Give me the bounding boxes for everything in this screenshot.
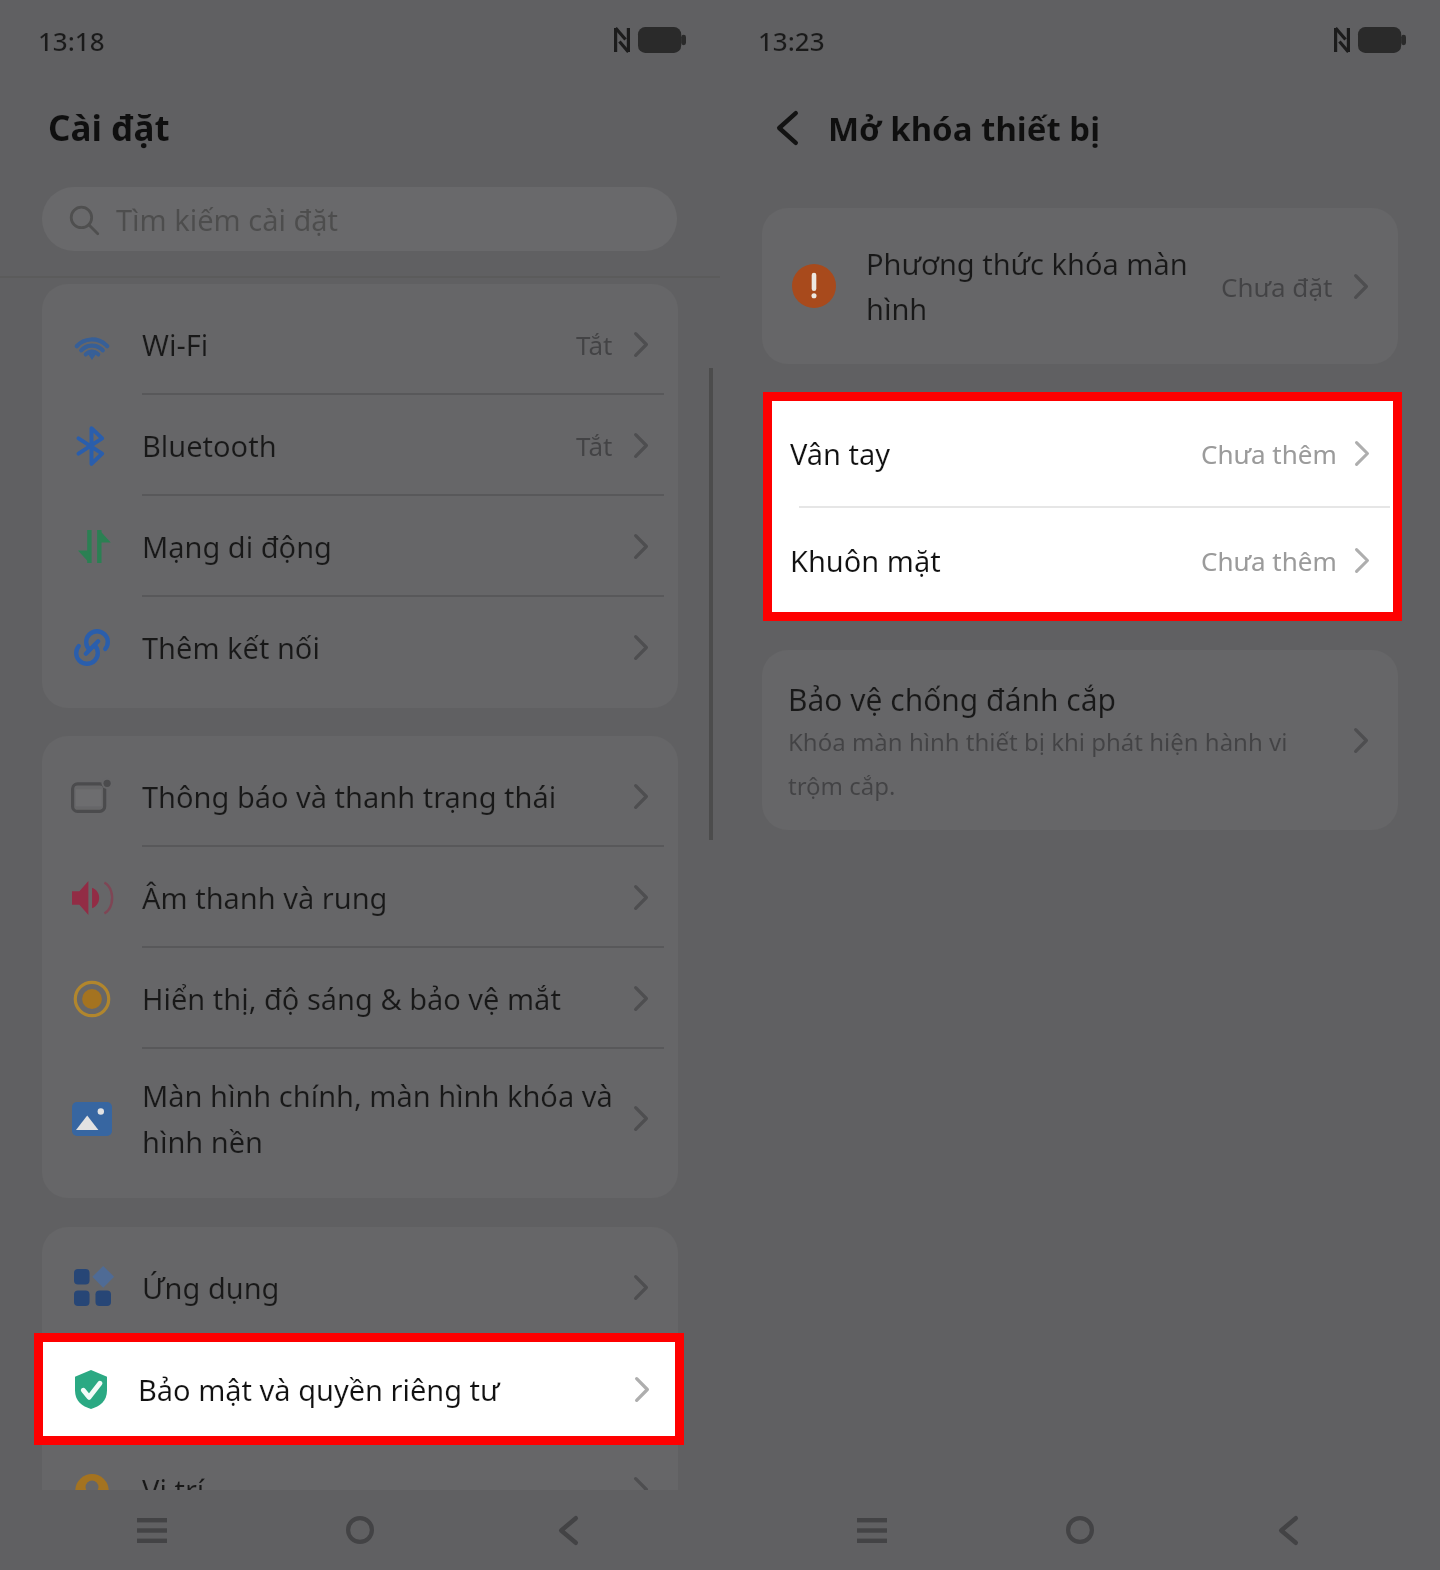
- staticText: Mạng di động: [142, 527, 624, 566]
- staticText: Khóa màn hình thiết bị khi phát hiện hàn…: [788, 725, 1342, 802]
- staticText: Hiển thị, độ sáng & bảo vệ mắt: [142, 979, 624, 1018]
- button[interactable]: Back: [1232, 1490, 1344, 1570]
- button[interactable]: Thông báo và thanh trạng thái: [42, 746, 678, 847]
- staticText: Chưa thêm: [1201, 436, 1337, 471]
- button[interactable]: Thêm kết nối: [42, 597, 678, 698]
- staticText: Màn hình chính, màn hình khóa và hình nề…: [142, 1076, 624, 1162]
- staticText: Thêm kết nối: [142, 628, 624, 667]
- staticText: Bluetooth: [142, 426, 566, 465]
- button[interactable]: Bảo mật và quyền riêng tư: [42, 1338, 678, 1439]
- button[interactable]: Home: [1024, 1490, 1136, 1570]
- staticText: Cài đặt: [48, 104, 170, 152]
- button[interactable]: Bảo vệ chống đánh cắp: [762, 650, 1398, 830]
- button[interactable]: Wi-Fi: [42, 294, 678, 395]
- staticText: Âm thanh và rung: [142, 878, 624, 917]
- staticText: Phương thức khóa màn hình: [866, 244, 1213, 329]
- button[interactable]: Back: [770, 104, 804, 152]
- staticText: Chưa thêm: [1201, 543, 1337, 578]
- button[interactable]: Recent apps: [816, 1490, 928, 1570]
- staticText: Mở khóa thiết bị: [828, 106, 1101, 151]
- button[interactable]: Bluetooth: [42, 395, 678, 496]
- button[interactable]: Mạng di động: [42, 496, 678, 597]
- staticText: Ứng dụng: [142, 1268, 624, 1307]
- button[interactable]: Recent apps: [96, 1490, 208, 1570]
- button[interactable]: Hiển thị, độ sáng & bảo vệ mắt: [42, 948, 678, 1049]
- staticText: Thông báo và thanh trạng thái: [142, 777, 624, 816]
- button[interactable]: Màn hình chính, màn hình khóa và hình nề…: [42, 1049, 678, 1188]
- button[interactable]: Phương thức khóa màn hình: [762, 208, 1398, 364]
- staticText: Bảo mật và quyền riêng tư: [138, 1370, 635, 1409]
- button[interactable]: Vị trí: [42, 1439, 678, 1490]
- staticText: 13:23: [758, 23, 825, 58]
- staticText: Vân tay: [790, 434, 1201, 473]
- staticText: Tìm kiếm cài đặt: [116, 200, 339, 239]
- staticText: 13:18: [38, 23, 105, 58]
- staticText: Wi-Fi: [142, 325, 566, 364]
- staticText: Tắt: [576, 327, 613, 362]
- button[interactable]: Back: [512, 1490, 624, 1570]
- staticText: Bảo mật và quyền riêng tư: [142, 1369, 624, 1408]
- button[interactable]: Ứng dụng: [42, 1237, 678, 1338]
- staticText: Vị trí: [142, 1470, 624, 1490]
- button[interactable]: Âm thanh và rung: [42, 847, 678, 948]
- button[interactable]: Khuôn mặt: [772, 508, 1393, 612]
- button[interactable]: Bảo mật và quyền riêng tư: [43, 1342, 675, 1436]
- button[interactable]: Home: [304, 1490, 416, 1570]
- staticText: Bảo vệ chống đánh cắp: [788, 679, 1117, 720]
- button[interactable]: Tìm kiếm cài đặt: [42, 187, 677, 251]
- staticText: Tắt: [576, 428, 613, 463]
- button[interactable]: Vân tay: [772, 401, 1393, 506]
- staticText: Chưa đặt: [1221, 269, 1333, 304]
- staticText: Khuôn mặt: [790, 541, 1201, 580]
